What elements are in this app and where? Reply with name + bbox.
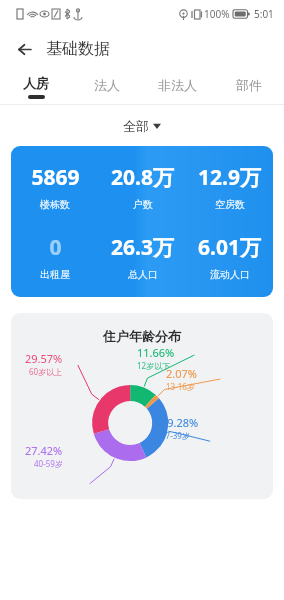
staticText: 全部 (123, 118, 149, 134)
staticText: 17-39岁 (161, 430, 190, 441)
staticText: 6.01万 (198, 233, 261, 262)
staticText: 27.42% (25, 443, 63, 458)
staticText: 空房数 (215, 198, 245, 211)
staticText: 13-16岁 (166, 381, 195, 392)
staticText: 总人口 (128, 268, 158, 281)
staticText: 29.28% (161, 415, 199, 430)
staticText: 26.3万 (111, 233, 174, 262)
staticText: 非法人 (158, 77, 197, 93)
staticText: 户数 (133, 198, 153, 211)
staticText: 法人 (94, 77, 120, 93)
staticText: 0 (49, 233, 62, 262)
staticText: 人房 (23, 75, 49, 91)
button[interactable]: 全部 (113, 115, 171, 137)
staticText: 楼栋数 (40, 198, 70, 211)
staticText: 40-59岁 (34, 458, 63, 469)
button[interactable]: 返回 (8, 32, 42, 66)
staticText: 11.66% (137, 345, 175, 360)
staticText: 2.07% (166, 366, 197, 381)
staticText: 流动人口 (210, 268, 250, 281)
staticText: 5:01 (254, 7, 274, 21)
staticText: 20.8万 (111, 163, 174, 192)
staticText: 5869 (31, 163, 80, 192)
button[interactable]: 部件 (213, 70, 284, 104)
staticText: 12.9万 (198, 163, 261, 192)
button[interactable]: 法人 (71, 70, 142, 104)
button[interactable]: 5869 (11, 146, 273, 297)
staticText: 住户年龄分布 (103, 328, 181, 344)
staticText: 出租屋 (40, 268, 70, 281)
button[interactable]: 非法人 (142, 70, 213, 104)
staticText: 部件 (236, 77, 262, 93)
staticText: 基础数据 (46, 39, 110, 59)
staticText: 100% (204, 7, 230, 21)
staticText: 29.57% (25, 351, 63, 366)
staticText: 12岁以下 (137, 360, 171, 371)
staticText: 60岁以上 (29, 366, 63, 377)
button[interactable]: 人房 (0, 70, 71, 104)
